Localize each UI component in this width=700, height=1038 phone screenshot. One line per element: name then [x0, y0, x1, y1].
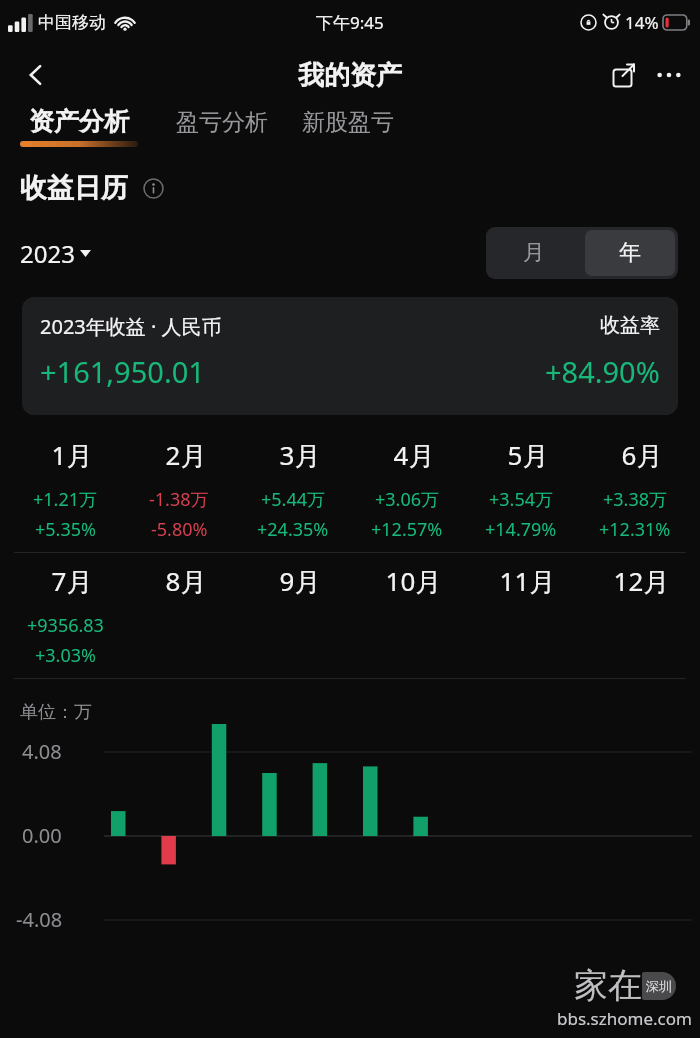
- staticText: 资产分析: [29, 106, 129, 137]
- staticText: +12.57%: [371, 517, 443, 542]
- button[interactable]: Share: [600, 52, 646, 98]
- staticText: -4.08: [16, 906, 63, 933]
- staticText: +12.31%: [599, 517, 671, 542]
- staticText: -1.38万: [149, 487, 209, 512]
- staticText: 3月: [266, 437, 321, 473]
- button[interactable]: 9月: [236, 563, 350, 661]
- button[interactable]: 10月: [350, 563, 464, 661]
- staticText: 2023: [20, 237, 75, 270]
- button[interactable]: 2023: [20, 237, 91, 270]
- button[interactable]: 月: [489, 230, 579, 276]
- staticText: 家在: [574, 964, 642, 1007]
- button[interactable]: 2月: [122, 437, 236, 542]
- staticText: 12月: [600, 563, 670, 599]
- staticText: +5.44万: [261, 487, 326, 512]
- staticText: 11月: [486, 563, 556, 599]
- staticText: 2月: [152, 437, 207, 473]
- staticText: 6月: [608, 437, 663, 473]
- staticText: 单位：万: [20, 701, 92, 724]
- button[interactable]: 11月: [464, 563, 578, 661]
- staticText: 1月: [38, 437, 93, 473]
- button[interactable]: More options: [646, 52, 692, 98]
- staticText: 收益日历: [20, 171, 128, 205]
- staticText: bbs.szhome.com: [557, 1007, 692, 1030]
- staticText: +3.06万: [375, 487, 440, 512]
- staticText: 0.00: [22, 822, 62, 849]
- staticText: +1.21万: [33, 487, 98, 512]
- staticText: 9月: [266, 563, 321, 599]
- staticText: 下午9:45: [316, 11, 384, 34]
- button[interactable]: 7月: [8, 563, 122, 668]
- button[interactable]: 资产分析: [18, 106, 140, 147]
- staticText: 新股盈亏: [302, 108, 394, 137]
- staticText: 月: [523, 239, 545, 267]
- button[interactable]: 盈亏分析: [174, 108, 270, 147]
- staticText: +84.90%: [545, 352, 660, 391]
- button[interactable]: 5月: [464, 437, 578, 542]
- button[interactable]: Back: [10, 49, 62, 101]
- button[interactable]: 4月: [350, 437, 464, 542]
- staticText: 10月: [372, 563, 442, 599]
- button[interactable]: 6月: [578, 437, 692, 542]
- button[interactable]: 8月: [122, 563, 236, 661]
- staticText: +5.35%: [35, 517, 96, 542]
- staticText: 盈亏分析: [176, 108, 268, 137]
- button[interactable]: 2023年收益 · 人民币: [22, 297, 678, 415]
- staticText: 中国移动: [38, 12, 106, 33]
- staticText: -5.80%: [151, 517, 208, 542]
- staticText: +24.35%: [257, 517, 329, 542]
- staticText: +9356.83: [27, 613, 104, 638]
- button[interactable]: 新股盈亏: [300, 108, 396, 147]
- staticText: 年: [619, 239, 641, 267]
- staticText: +3.54万: [489, 487, 554, 512]
- staticText: +3.03%: [35, 643, 96, 668]
- staticText: 深圳: [646, 978, 672, 994]
- button[interactable]: 年: [585, 230, 675, 276]
- staticText: 4.08: [22, 738, 62, 765]
- staticText: +161,950.01: [40, 352, 205, 391]
- staticText: 我的资产: [298, 59, 402, 92]
- staticText: 14%: [625, 11, 659, 34]
- button[interactable]: 12月: [578, 563, 692, 661]
- staticText: 4月: [380, 437, 435, 473]
- button[interactable]: 1月: [8, 437, 122, 542]
- staticText: +14.79%: [485, 517, 557, 542]
- staticText: 7月: [38, 563, 93, 599]
- staticText: +3.38万: [603, 487, 668, 512]
- staticText: 收益率: [600, 313, 660, 338]
- button[interactable]: 3月: [236, 437, 350, 542]
- staticText: 5月: [494, 437, 549, 473]
- staticText: 2023年收益 · 人民币: [40, 313, 222, 340]
- staticText: 8月: [152, 563, 207, 599]
- button[interactable]: Info: [138, 173, 168, 203]
